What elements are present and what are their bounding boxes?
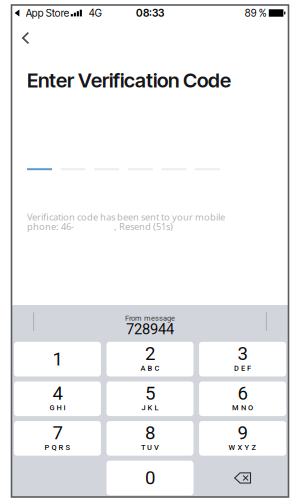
staticText: 7 xyxy=(52,422,62,444)
staticText: 4G xyxy=(89,7,102,19)
staticText: D E F xyxy=(234,364,251,372)
staticText: G H I xyxy=(49,403,65,412)
staticText: 08:33 xyxy=(136,7,164,19)
staticText: 1 xyxy=(52,348,62,370)
button[interactable]: 9 xyxy=(199,421,286,456)
staticText: M N O xyxy=(232,403,253,412)
staticText: 89 % xyxy=(245,7,267,19)
staticText: W X Y Z xyxy=(229,443,257,452)
staticText: Verification code has been sent to your … xyxy=(27,211,225,223)
staticText: 6 xyxy=(238,382,248,404)
staticText: 9 xyxy=(238,422,248,444)
button[interactable]: 2 xyxy=(106,342,193,376)
button[interactable]: 0 xyxy=(106,461,193,495)
button[interactable]: Back xyxy=(15,27,37,49)
button[interactable]: 8 xyxy=(106,421,193,456)
staticText: 5 xyxy=(145,382,155,404)
staticText: 3 xyxy=(238,343,248,365)
button[interactable]: From message xyxy=(85,309,215,339)
staticText: 2 xyxy=(145,343,155,365)
button[interactable]: 1 xyxy=(14,342,101,376)
button[interactable]: 3 xyxy=(199,342,286,376)
button[interactable]: Delete xyxy=(199,461,286,495)
staticText: From message xyxy=(125,314,175,322)
staticText: Enter Verification Code xyxy=(27,68,231,92)
staticText: T U V xyxy=(141,443,159,452)
button[interactable]: 6 xyxy=(199,381,286,416)
button[interactable]: 4 xyxy=(14,381,101,416)
staticText: 0 xyxy=(145,467,155,489)
staticText: 8 xyxy=(145,422,155,444)
staticText: App Store xyxy=(26,7,69,19)
staticText: 4 xyxy=(52,382,62,404)
staticText: P Q R S xyxy=(44,443,70,452)
staticText: A B C xyxy=(140,364,159,372)
button[interactable]: 7 xyxy=(14,421,101,456)
staticText: J K L xyxy=(141,403,158,412)
staticText: 728944 xyxy=(126,321,174,338)
button[interactable]: 5 xyxy=(106,381,193,416)
staticText: phone: 46- , Resend (51s) xyxy=(27,220,173,232)
